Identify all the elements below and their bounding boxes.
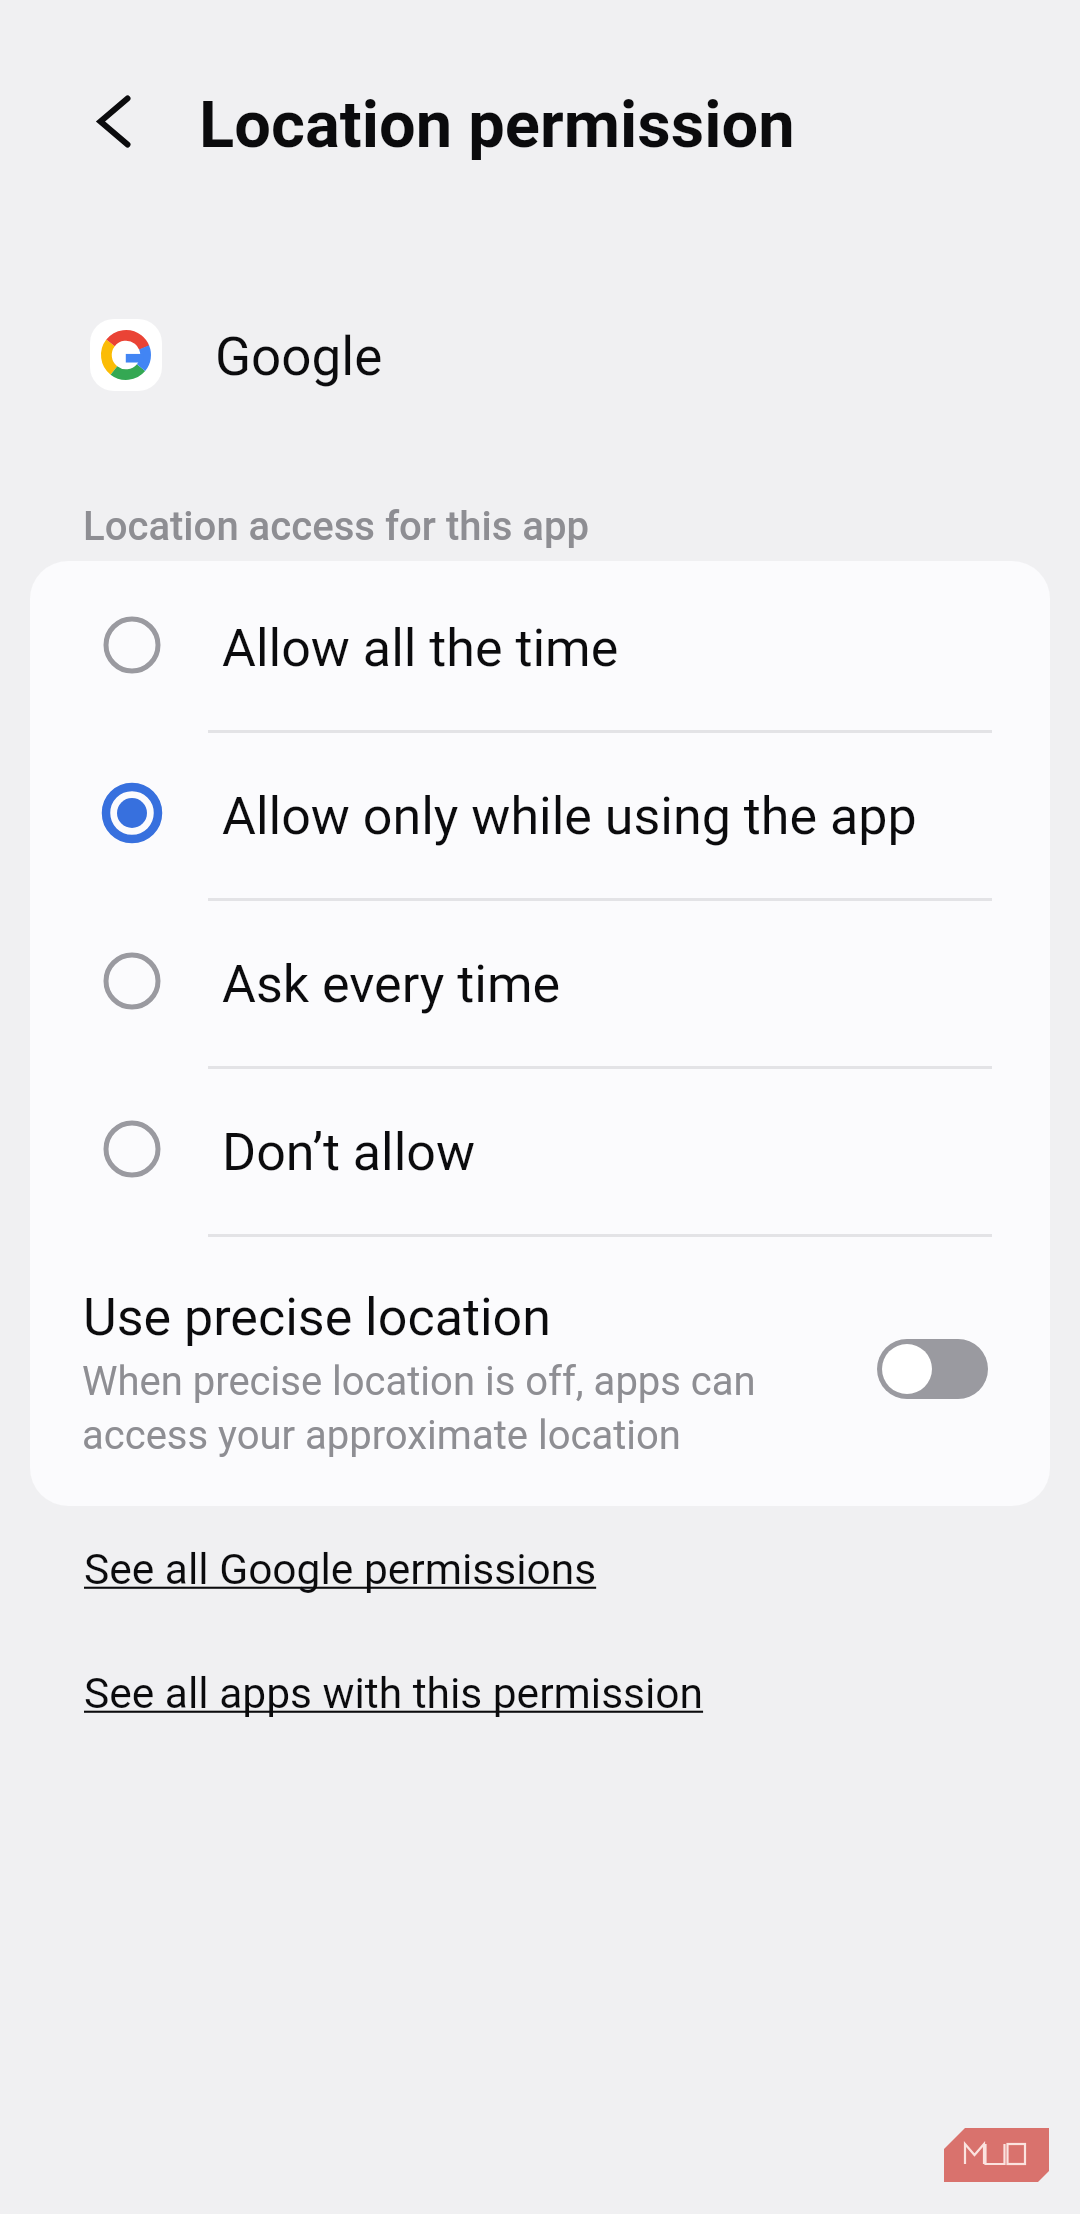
staticText: Don’t allow (222, 1122, 476, 1183)
button[interactable]: Use precise location toggle (877, 1339, 988, 1399)
staticText: See all apps with this permission (84, 1669, 704, 1719)
button[interactable]: See all apps with this permission (76, 1655, 712, 1733)
staticText: Use precise location (83, 1287, 551, 1348)
button[interactable]: See all Google permissions (76, 1531, 605, 1609)
staticText: Google (215, 326, 383, 388)
staticText: When precise location is off, apps can a… (82, 1358, 756, 1459)
staticText: Location permission (199, 87, 795, 163)
button[interactable]: Back (72, 79, 156, 163)
button[interactable]: Allow all the time (30, 561, 1050, 729)
staticText: Ask every time (222, 954, 561, 1015)
staticText: Allow only while using the app (222, 786, 917, 847)
staticText: Location access for this app (83, 503, 589, 550)
staticText: Allow all the time (222, 618, 619, 679)
button[interactable]: Allow only while using the app (30, 729, 1050, 897)
button[interactable]: Use precise location (30, 1233, 1050, 1505)
staticText: See all Google permissions (84, 1545, 597, 1595)
button[interactable]: Ask every time (30, 897, 1050, 1065)
button[interactable]: Don’t allow (30, 1065, 1050, 1233)
